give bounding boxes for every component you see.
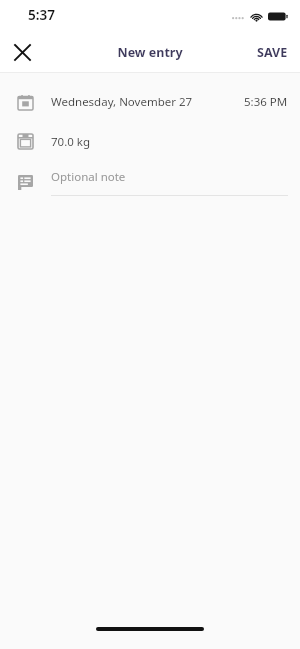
staticText: Wednesday, November 27 [51,94,193,110]
button[interactable]: Wednesday, November 27 [0,83,300,121]
staticText: 5:37 [28,6,55,24]
staticText: Optional note [51,169,126,185]
button[interactable]: SAVE [245,36,300,69]
staticText: SAVE [257,44,288,61]
button[interactable]: Close [6,36,38,68]
staticText: New entry [117,44,183,61]
button[interactable]: 70.0 kg [0,121,300,162]
button[interactable]: Optional note [0,162,300,203]
staticText: 70.0 kg [51,134,91,150]
staticText: 5:36 PM [244,94,288,110]
